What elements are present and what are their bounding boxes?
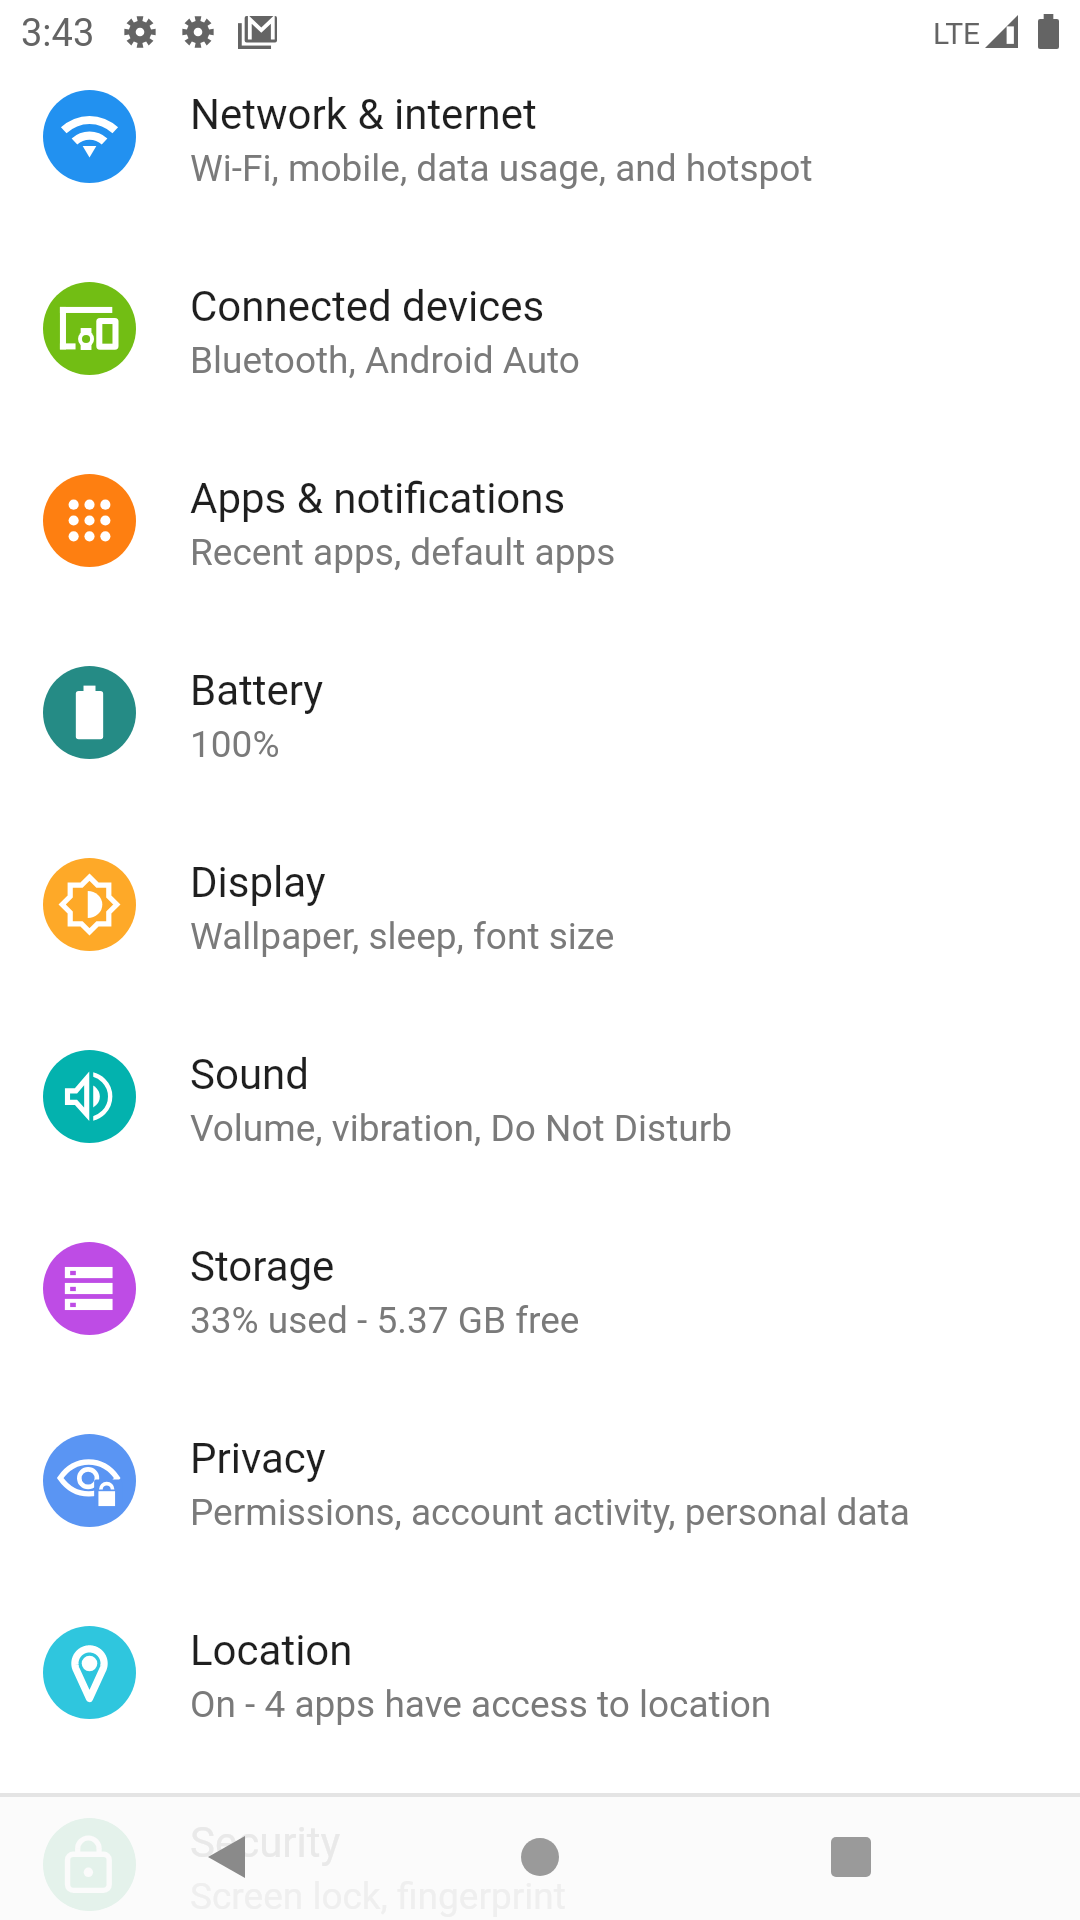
- staticText: Location: [190, 1626, 353, 1675]
- button[interactable]: Home: [474, 1791, 606, 1920]
- staticText: LTE: [933, 16, 981, 51]
- button[interactable]: Security: [0, 1768, 1080, 1920]
- staticText: Privacy: [190, 1434, 326, 1483]
- staticText: 33% used - 5.37 GB free: [190, 1299, 580, 1342]
- staticText: Recent apps, default apps: [190, 531, 616, 574]
- button[interactable]: Display: [0, 808, 1080, 1000]
- button[interactable]: Location: [0, 1576, 1080, 1768]
- button[interactable]: Storage: [0, 1192, 1080, 1384]
- staticText: Security: [190, 1818, 341, 1867]
- staticText: Sound: [190, 1050, 309, 1099]
- staticText: Battery: [190, 666, 324, 715]
- button[interactable]: Network & internet: [0, 40, 1080, 232]
- staticText: Wi-Fi, mobile, data usage, and hotspot: [190, 147, 813, 190]
- staticText: Display: [190, 858, 326, 907]
- staticText: Screen lock, fingerprint: [190, 1875, 566, 1918]
- staticText: Connected devices: [190, 282, 545, 331]
- button[interactable]: Privacy: [0, 1384, 1080, 1576]
- button[interactable]: Recent apps: [785, 1791, 917, 1920]
- staticText: 3:43: [21, 11, 95, 56]
- staticText: Network & internet: [190, 90, 537, 139]
- staticText: Wallpaper, sleep, font size: [190, 915, 615, 958]
- staticText: Apps & notifications: [190, 474, 566, 523]
- button[interactable]: Security: [0, 1768, 1080, 1920]
- staticText: Volume, vibration, Do Not Disturb: [190, 1107, 733, 1150]
- staticText: Bluetooth, Android Auto: [190, 339, 580, 382]
- staticText: Security: [190, 1818, 341, 1867]
- button[interactable]: Apps & notifications: [0, 424, 1080, 616]
- staticText: Storage: [190, 1242, 335, 1291]
- button[interactable]: Connected devices: [0, 232, 1080, 424]
- staticText: On - 4 apps have access to location: [190, 1683, 772, 1726]
- button[interactable]: Sound: [0, 1000, 1080, 1192]
- staticText: Screen lock, fingerprint: [190, 1875, 566, 1918]
- button[interactable]: Battery: [0, 616, 1080, 808]
- staticText: Permissions, account activity, personal …: [190, 1491, 910, 1534]
- button[interactable]: Back: [160, 1791, 292, 1920]
- staticText: 100%: [190, 723, 280, 766]
